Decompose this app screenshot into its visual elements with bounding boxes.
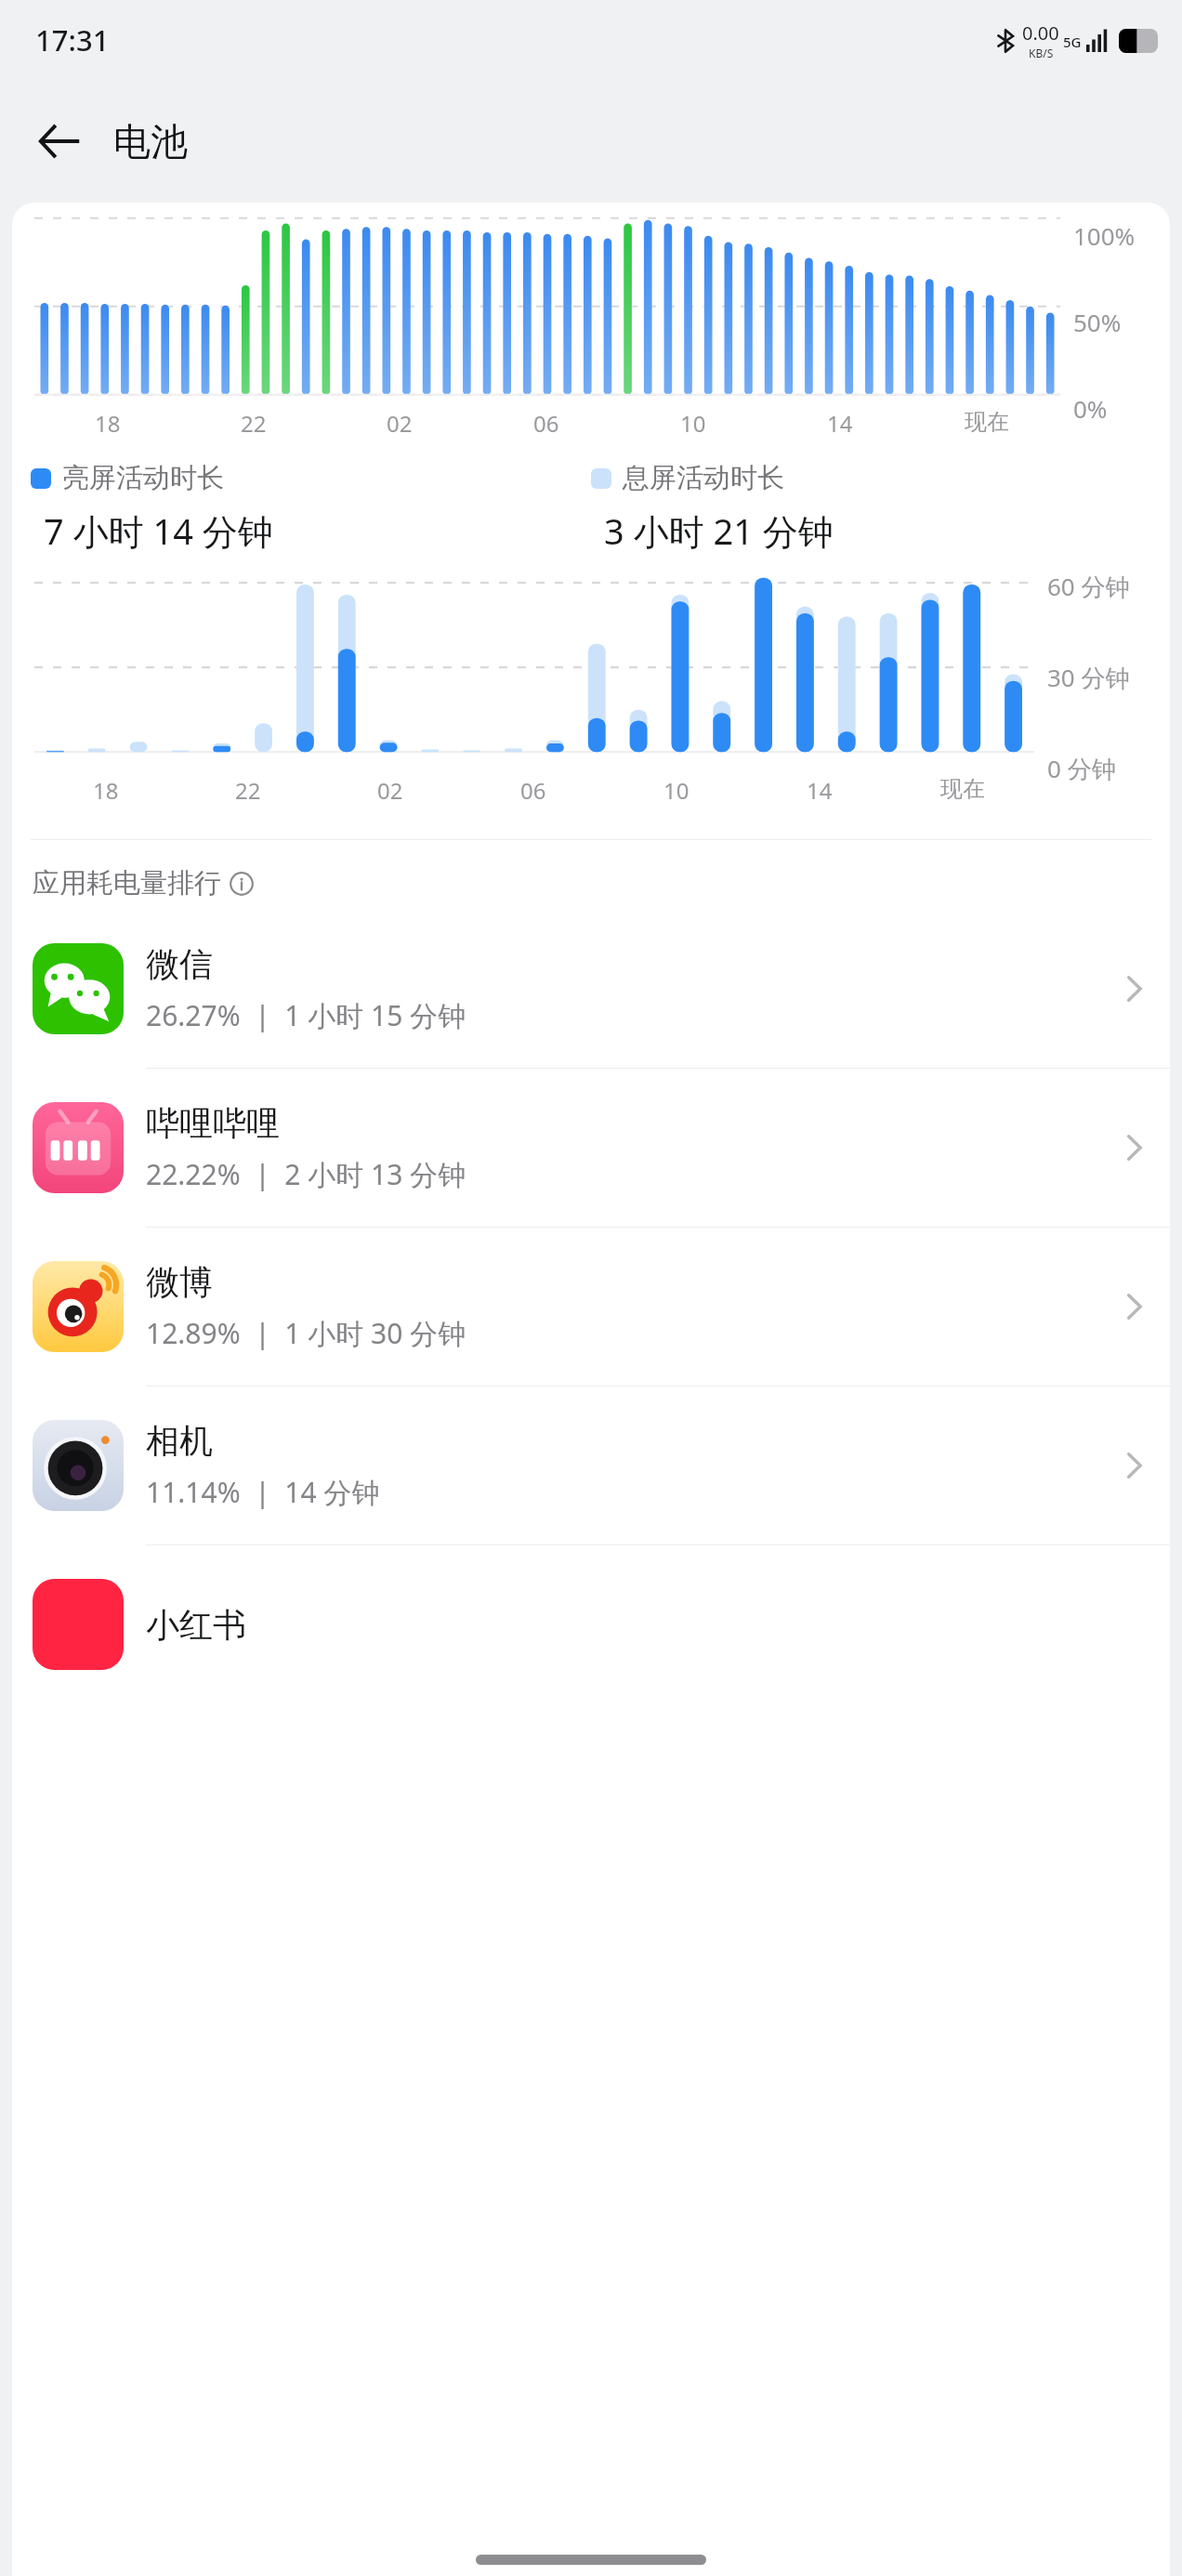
staticText: 10 [663, 775, 689, 806]
staticText: 12.89% | 1 小时 30 分钟 [146, 1314, 466, 1352]
button[interactable]: 微博 [12, 1228, 1170, 1387]
staticText: 11.14% | 14 分钟 [146, 1473, 380, 1511]
staticText: 哔哩哔哩 [146, 1102, 280, 1144]
staticText: 02 [387, 408, 413, 439]
staticText: 0.00 [1022, 20, 1059, 46]
staticText: 电池 [113, 118, 188, 164]
staticText: 14 [807, 775, 833, 806]
staticText: 5G [1063, 33, 1082, 51]
staticText: 14 [827, 408, 853, 439]
staticText: 30 分钟 [1047, 661, 1130, 694]
staticText: 02 [377, 775, 403, 806]
staticText: 22 [235, 775, 261, 806]
button[interactable]: 小红书 [12, 1545, 1170, 1703]
staticText: 50% [1073, 306, 1122, 338]
button[interactable]: 微信 [12, 910, 1170, 1069]
staticText: 22 [241, 408, 267, 439]
staticText: 0% [1073, 392, 1108, 425]
staticText: 亮屏活动时长 [62, 461, 224, 495]
staticText: 微博 [146, 1261, 213, 1303]
staticText: 相机 [146, 1420, 213, 1462]
staticText: 60 分钟 [1047, 570, 1130, 603]
button[interactable]: Back [22, 104, 97, 178]
staticText: 06 [520, 775, 546, 806]
staticText: 应用耗电量排行 [33, 866, 221, 900]
button[interactable]: 相机 [12, 1387, 1170, 1545]
staticText: 26.27% | 1 小时 15 分钟 [146, 996, 466, 1034]
staticText: 微信 [146, 943, 213, 985]
staticText: 现在 [940, 775, 985, 803]
staticText: 18 [93, 775, 119, 806]
staticText: 18 [95, 408, 121, 439]
staticText: KB/S [1029, 46, 1054, 60]
staticText: 22.22% | 2 小时 13 分钟 [146, 1155, 466, 1193]
staticText: 小红书 [146, 1604, 246, 1646]
staticText: 10 [680, 408, 706, 439]
button[interactable]: Info [227, 869, 256, 899]
staticText: 现在 [965, 408, 1009, 436]
staticText: 息屏活动时长 [623, 461, 784, 495]
staticText: 06 [533, 408, 559, 439]
staticText: 100% [1073, 219, 1136, 252]
staticText: 0 分钟 [1047, 752, 1116, 785]
staticText: 17:31 [35, 20, 110, 59]
staticText: 3 小时 21 分钟 [604, 506, 834, 555]
staticText: 7 小时 14 分钟 [44, 506, 273, 555]
button[interactable]: 哔哩哔哩 [12, 1069, 1170, 1228]
